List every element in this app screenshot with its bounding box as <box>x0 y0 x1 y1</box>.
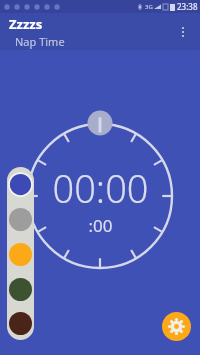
staticText: 00:00 <box>52 162 149 214</box>
staticText: 3G <box>145 3 153 11</box>
staticText: Zzzzs <box>9 15 43 33</box>
button[interactable]: Colour option 2 <box>7 202 34 237</box>
staticText: Nap Time <box>15 34 65 49</box>
button[interactable]: Colour option 3 <box>7 237 34 272</box>
button[interactable]: Settings <box>162 312 191 341</box>
staticText: 23:38 <box>177 1 198 12</box>
staticText: :00 <box>88 214 113 237</box>
button[interactable]: Colour option 5 <box>7 307 34 340</box>
button[interactable]: Colour option 1 <box>7 167 34 202</box>
button[interactable]: More options <box>166 15 200 49</box>
button[interactable]: Colour option 4 <box>7 272 34 307</box>
